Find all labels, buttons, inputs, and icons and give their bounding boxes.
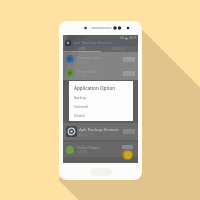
staticText: APPS (78, 47, 86, 51)
staticText: Details (74, 113, 85, 118)
button[interactable]: Details (69, 111, 133, 119)
staticText: BACKUPS (112, 47, 126, 51)
button[interactable]: BACKUP (123, 71, 135, 76)
staticText: Video Player (77, 145, 101, 150)
staticText: Photo Editor (77, 69, 99, 74)
staticText: Application Option (74, 85, 116, 91)
button[interactable]: Apk Backup Restore (63, 40, 138, 46)
staticText: Calendar Sync (77, 55, 101, 60)
staticText: BACKUP (124, 130, 134, 133)
button[interactable]: Add backup (122, 149, 133, 160)
staticText: Version 1.07 (79, 133, 94, 137)
button[interactable]: BACKUP (123, 129, 135, 134)
button[interactable]: APPS (63, 46, 100, 52)
staticText: 4G (120, 36, 124, 40)
button[interactable]: BACKUPS (100, 46, 138, 52)
button[interactable]: Apk Backup Restore (63, 123, 138, 140)
staticText: Apk Backup Restore (73, 40, 113, 46)
staticText: Backup (74, 95, 86, 100)
staticText: BACKUP (124, 58, 134, 61)
staticText: BACKUP (124, 72, 134, 75)
button[interactable]: Photo Editor (63, 66, 138, 80)
staticText: Apk Backup Restore (79, 127, 119, 133)
button[interactable]: Video Player (63, 142, 138, 157)
staticText: Uninstall (74, 104, 89, 109)
staticText: 20:11 (129, 36, 137, 40)
button[interactable]: Calendar Sync (63, 52, 138, 66)
button[interactable]: Uninstall (69, 102, 133, 110)
staticText: 9.4 MB (77, 150, 87, 154)
button[interactable]: BACKUP (123, 57, 135, 62)
button[interactable]: Backup (69, 93, 133, 101)
